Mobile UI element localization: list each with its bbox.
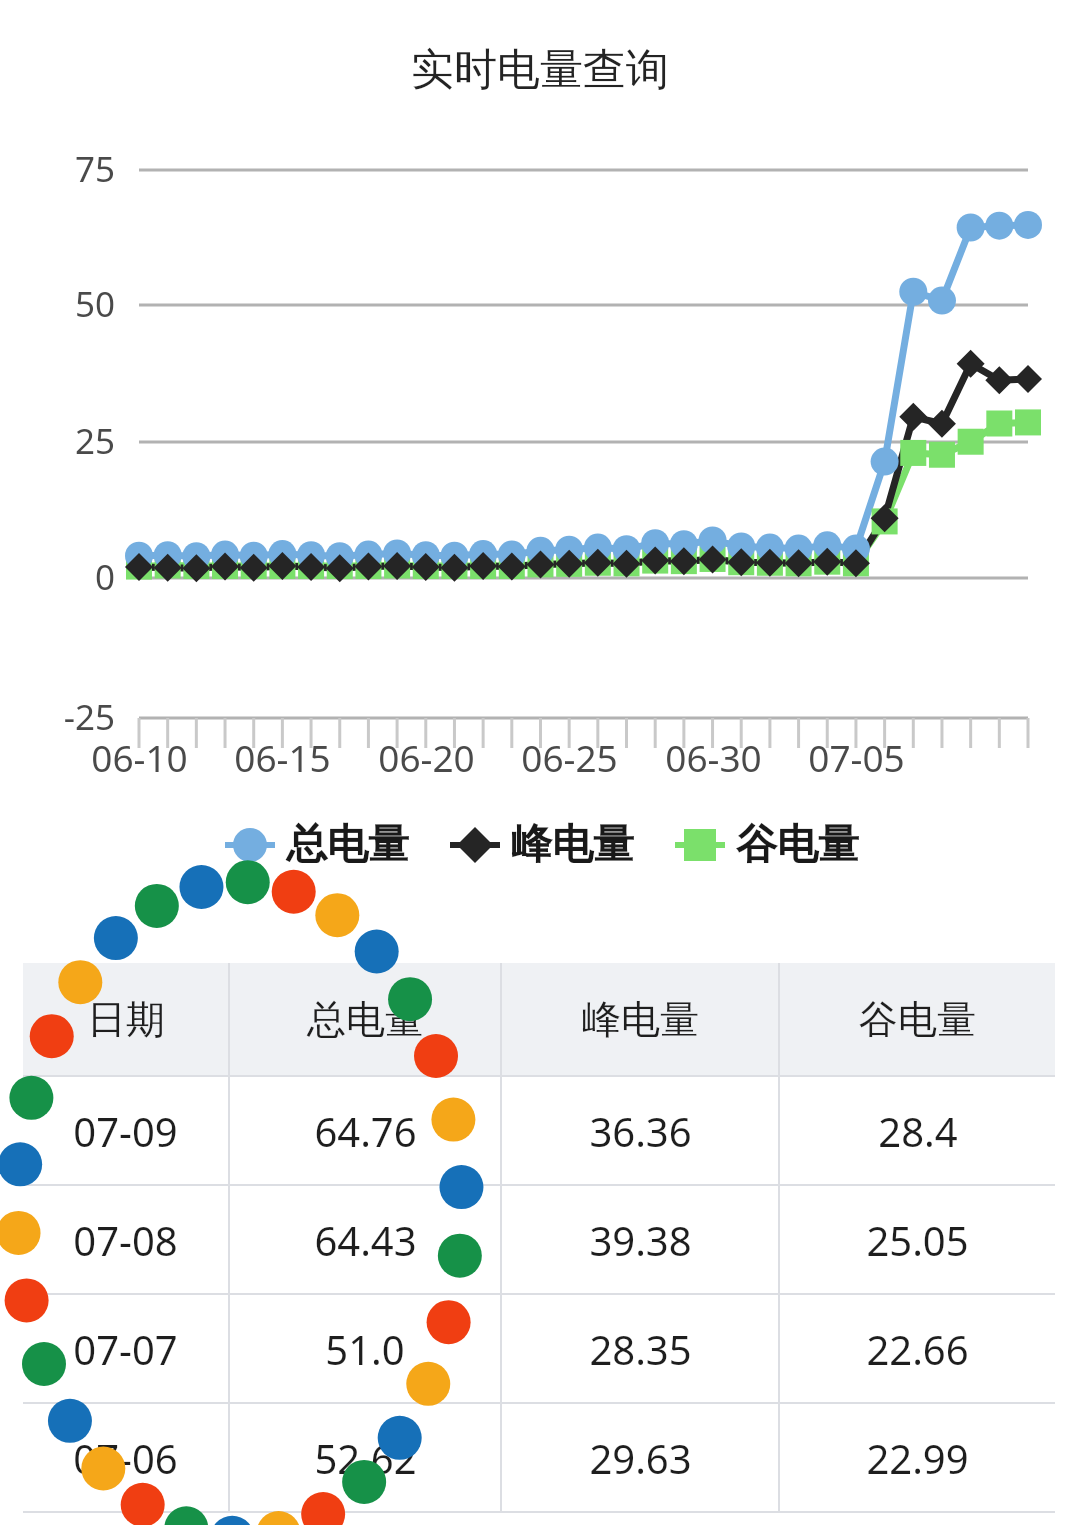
button[interactable]: 总电量: [222, 819, 409, 871]
staticText: 25.05: [866, 1213, 969, 1267]
staticText: 06-20: [378, 732, 475, 782]
button[interactable]: 07-07: [23, 1295, 1055, 1402]
staticText: 谷电量: [859, 995, 976, 1044]
staticText: 07-06: [73, 1431, 178, 1485]
staticText: 28.35: [589, 1322, 692, 1376]
staticText: 峰电量: [582, 995, 699, 1044]
staticText: 29.63: [589, 1431, 692, 1485]
staticText: 75: [74, 145, 115, 193]
staticText: 52.62: [314, 1431, 417, 1485]
staticText: 0: [94, 553, 115, 601]
staticText: 64.76: [314, 1104, 417, 1158]
staticText: 06-15: [234, 732, 331, 782]
staticText: 07-07: [73, 1322, 178, 1376]
staticText: 28.4: [878, 1104, 958, 1158]
staticText: 总电量: [307, 995, 424, 1044]
staticText: 日期: [87, 995, 165, 1044]
staticText: 06-30: [665, 732, 762, 782]
button[interactable]: 日期: [23, 963, 1055, 1075]
staticText: 22.66: [866, 1322, 969, 1376]
staticText: 51.0: [325, 1322, 405, 1376]
staticText: 07-05: [808, 732, 905, 782]
staticText: 07-09: [73, 1104, 178, 1158]
button[interactable]: 峰电量: [447, 819, 634, 871]
button[interactable]: 07-08: [23, 1186, 1055, 1293]
button[interactable]: 07-09: [23, 1077, 1055, 1184]
staticText: 64.43: [314, 1213, 417, 1267]
staticText: -25: [63, 693, 115, 741]
staticText: 07-08: [73, 1213, 178, 1267]
staticText: 06-10: [91, 732, 188, 782]
staticText: 22.99: [866, 1431, 969, 1485]
button[interactable]: 07-06: [23, 1404, 1055, 1511]
staticText: 峰电量: [511, 819, 634, 871]
staticText: 06-25: [521, 732, 618, 782]
button[interactable]: 谷电量: [672, 819, 859, 871]
staticText: 实时电量查询: [411, 43, 669, 97]
staticText: 39.38: [589, 1213, 692, 1267]
staticText: 25: [74, 417, 115, 465]
staticText: 50: [74, 280, 115, 328]
staticText: 总电量: [286, 819, 409, 871]
staticText: 谷电量: [736, 819, 859, 871]
staticText: 36.36: [589, 1104, 692, 1158]
